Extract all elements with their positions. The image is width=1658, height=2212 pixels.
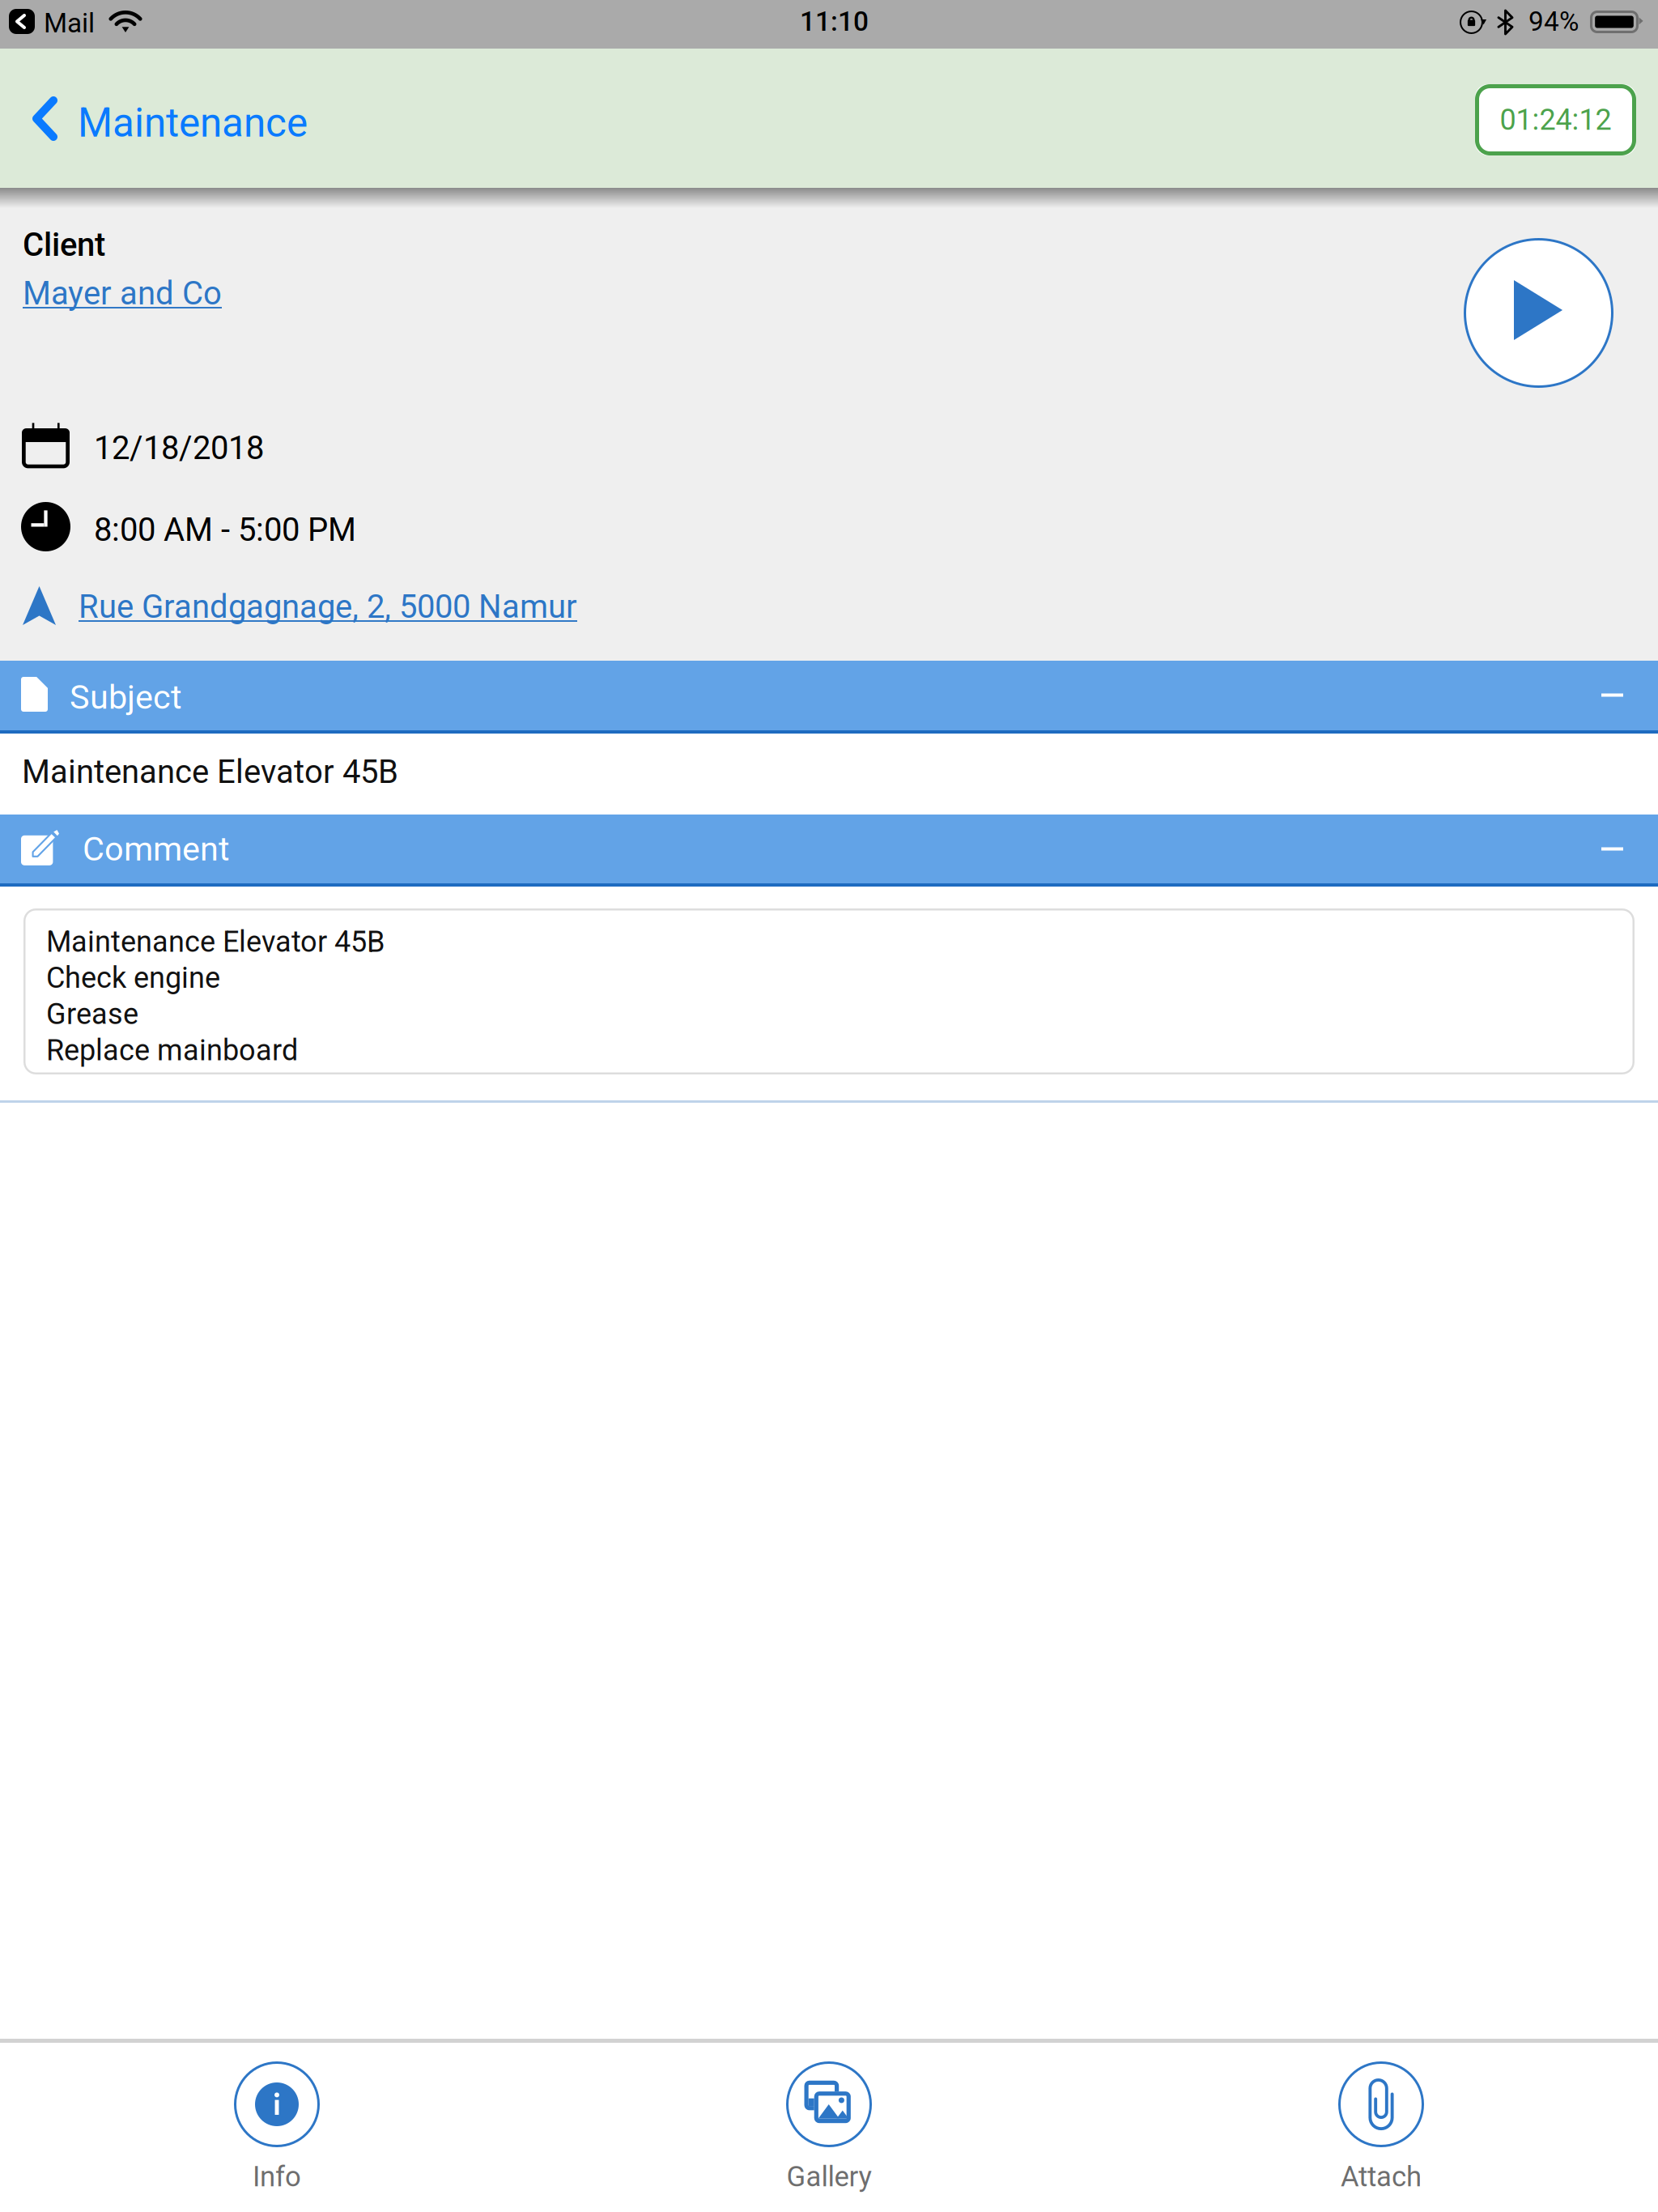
staticText: 12/18/2018 — [94, 429, 264, 467]
staticText: Rue Grandgagnage, 2, 5000 Namur — [79, 588, 577, 626]
staticText: Gallery — [786, 2160, 872, 2193]
button[interactable]: Info — [1, 2043, 553, 2212]
staticText: Replace mainboard — [46, 1033, 298, 1067]
staticText: Maintenance Elevator 45B — [46, 925, 385, 959]
button[interactable]: Subject — [0, 661, 1658, 730]
staticText: Subject — [70, 678, 182, 717]
staticText: Comment — [83, 829, 230, 869]
staticText: Grease — [46, 997, 138, 1031]
button[interactable]: 01:24:12 — [1475, 84, 1636, 155]
staticText: 94% — [1528, 6, 1579, 37]
button[interactable]: Attach — [1105, 2043, 1657, 2212]
button[interactable]: Maintenance — [24, 74, 316, 171]
button[interactable]: Gallery — [553, 2043, 1105, 2212]
button[interactable]: Mayer and Co — [23, 274, 222, 312]
staticText: Attach — [1341, 2160, 1422, 2193]
staticText: Info — [253, 2160, 301, 2193]
staticText: Maintenance Elevator 45B — [22, 753, 398, 791]
staticText: Check engine — [46, 961, 220, 995]
button[interactable]: Comment — [0, 815, 1658, 883]
button[interactable]: Start job — [1464, 238, 1613, 388]
staticText: 11:10 — [800, 6, 869, 37]
staticText: Mail — [44, 7, 95, 39]
staticText: Client — [23, 226, 105, 264]
staticText: 8:00 AM - 5:00 PM — [94, 511, 356, 549]
staticText: Mayer and Co — [23, 274, 222, 312]
staticText: Maintenance — [78, 100, 308, 146]
button[interactable]: Rue Grandgagnage, 2, 5000 Namur — [79, 588, 577, 626]
staticText: 01:24:12 — [1500, 103, 1611, 137]
